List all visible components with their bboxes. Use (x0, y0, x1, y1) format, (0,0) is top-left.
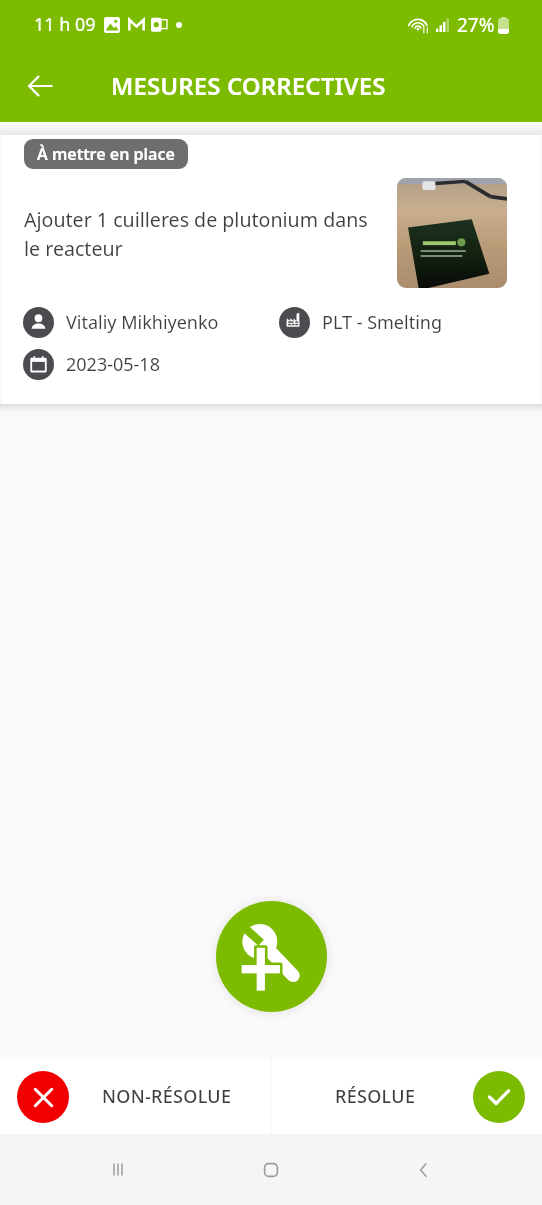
staticText: Ajouter 1 cuilleres de plutonium dans le… (24, 206, 382, 262)
staticText: RÉSOLUE (335, 1084, 416, 1109)
button[interactable]: Add corrective action (216, 901, 327, 1012)
staticText: MESURES CORRECTIVES (111, 69, 386, 102)
staticText: PLT - Smelting (322, 310, 442, 335)
staticText: NON-RÉSOLUE (102, 1084, 232, 1109)
button[interactable]: Back (347, 1134, 500, 1205)
button[interactable]: NON-RÉSOLUE (0, 1059, 270, 1134)
staticText: 11 h 09 (34, 12, 96, 37)
staticText: 27% (457, 12, 495, 38)
button[interactable]: RÉSOLUE (272, 1059, 542, 1134)
staticText: 2023-05-18 (66, 352, 160, 377)
staticText: À mettre en place (37, 143, 175, 165)
staticText: Vitaliy Mikhiyenko (66, 310, 219, 335)
button[interactable]: Recents (42, 1134, 194, 1205)
button[interactable]: Home (194, 1134, 347, 1205)
button[interactable]: Back (16, 62, 64, 110)
button[interactable]: À mettre en place (2, 135, 540, 404)
